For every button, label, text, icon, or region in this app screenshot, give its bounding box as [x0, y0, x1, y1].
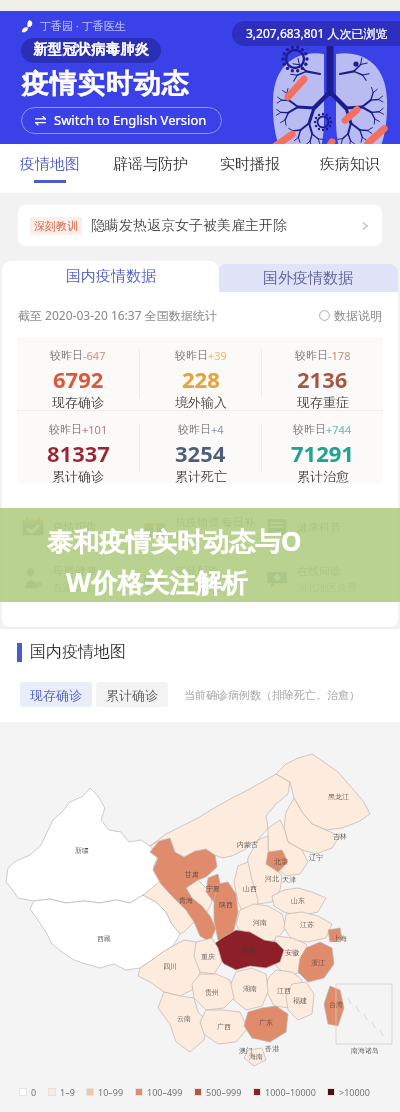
staticText: 较昨日	[49, 422, 82, 436]
button[interactable]: 疫情地图	[0, 144, 100, 193]
staticText: 湖北	[241, 946, 255, 955]
button[interactable]: 在线问诊	[264, 564, 386, 594]
button[interactable]: 抗疫物资 每日补货	[142, 514, 264, 544]
staticText: 境外输入	[175, 394, 227, 410]
button[interactable]: 疫情报告	[20, 514, 142, 540]
button[interactable]: 现存确诊	[20, 682, 92, 707]
staticText: 澳门	[239, 1046, 253, 1055]
button[interactable]: Switch to English Version	[21, 107, 222, 134]
staticText: 甘肃	[185, 870, 199, 879]
staticText: 0	[31, 1086, 37, 1098]
staticText: 100–499	[147, 1086, 183, 1098]
button[interactable]: 健康科普	[264, 514, 386, 540]
staticText: +39	[208, 348, 227, 363]
button[interactable]: 较昨日	[140, 337, 261, 410]
staticText: 228	[182, 364, 220, 394]
staticText: 国内疫情数据	[66, 267, 156, 286]
staticText: 累计确诊	[106, 687, 158, 703]
staticText: 3,207,683,801 人次已浏览	[246, 25, 388, 41]
staticText: 海南	[249, 1052, 263, 1061]
staticText: +101	[82, 422, 108, 437]
staticText: 国外疫情数据	[263, 269, 353, 288]
staticText: 上海	[333, 934, 347, 943]
staticText: 宁夏	[206, 884, 220, 893]
staticText: 河南	[253, 918, 267, 927]
staticText: 3254	[175, 438, 226, 468]
button[interactable]: 辟谣与防护	[100, 144, 200, 193]
staticText: 黑龙江	[328, 792, 349, 801]
staticText: 较昨日	[175, 348, 208, 362]
staticText: >10000	[339, 1086, 370, 1098]
staticText: 较昨日	[295, 348, 328, 362]
button[interactable]: 较昨日	[262, 411, 383, 484]
button[interactable]: 较昨日	[17, 411, 139, 484]
staticText: 泰和疫情实时动态与O	[47, 523, 302, 559]
staticText: 较昨日	[50, 348, 83, 362]
staticText: 截至 2020-03-20 16:37 全国数据统计	[18, 307, 217, 323]
staticText: 疫情报告	[53, 520, 97, 534]
staticText: 内蒙古	[237, 840, 258, 849]
staticText: 在家孕育指南	[53, 581, 113, 594]
button[interactable]: 实时播报	[200, 144, 300, 193]
staticText: -647	[83, 348, 106, 363]
staticText: 湖南	[243, 984, 257, 993]
staticText: 81337	[47, 438, 110, 468]
staticText: 北京	[274, 857, 288, 866]
staticText: 丁香园 · 丁香医生	[40, 18, 126, 33]
staticText: 现存重症	[297, 394, 349, 410]
staticText: 新型冠状病毒肺炎	[33, 41, 149, 59]
button[interactable]: 母婴健康	[20, 564, 142, 594]
staticText: 母婴健康	[53, 564, 97, 578]
staticText: 西藏	[97, 934, 111, 943]
staticText: 健康科普	[297, 520, 341, 534]
staticText: 福建	[293, 996, 307, 1005]
staticText: 陕西	[219, 900, 233, 909]
button[interactable]: 累计确诊	[96, 682, 168, 707]
staticText: 云南	[177, 1014, 191, 1023]
staticText: 台湾	[329, 1000, 343, 1009]
button[interactable]: 深刻教训	[18, 205, 382, 246]
staticText: Switch to English Version	[54, 111, 207, 129]
staticText: 广东	[259, 1018, 273, 1027]
staticText: 疫情地图	[20, 155, 80, 174]
staticText: 安徽	[285, 948, 299, 957]
staticText: 南海诸岛	[351, 1046, 379, 1055]
staticText: 山西	[243, 884, 257, 893]
staticText: 累计治愈	[297, 468, 349, 484]
button[interactable]: 国外疫情数据	[217, 264, 398, 292]
staticText: 辟谣与防护	[113, 155, 188, 174]
staticText: 四川	[163, 962, 177, 971]
staticText: -178	[328, 348, 351, 363]
staticText: 1000–10000	[265, 1086, 316, 1098]
staticText: 累计确诊	[52, 468, 104, 484]
staticText: 较昨日	[178, 422, 211, 436]
staticText: 药品配送	[175, 564, 219, 578]
staticText: 71291	[291, 438, 354, 468]
staticText: 在线问诊	[297, 564, 341, 578]
staticText: 现存确诊	[52, 394, 104, 410]
staticText: 抗疫物资 每日补货	[175, 514, 264, 544]
button[interactable]: 较昨日	[140, 411, 261, 484]
staticText: 吉林	[333, 832, 347, 841]
staticText: 6792	[53, 364, 104, 394]
staticText: 河北	[265, 874, 279, 883]
staticText: 数据说明	[334, 308, 382, 323]
staticText: 现存确诊	[30, 687, 82, 703]
button[interactable]: 药品配送	[142, 564, 264, 594]
staticText: W价格关注解析	[66, 564, 248, 600]
button[interactable]: 较昨日	[262, 337, 383, 410]
staticText: 快递送货上门	[175, 581, 235, 594]
staticText: 隐瞒发热返京女子被美雇主开除	[91, 217, 360, 235]
staticText: 当前确诊病例数（排除死亡、治愈）	[184, 688, 360, 702]
button[interactable]: 国内疫情数据	[2, 261, 219, 292]
staticText: 重庆	[201, 952, 215, 961]
staticText: 辽宁	[309, 853, 323, 862]
button[interactable]: 较昨日	[17, 337, 139, 410]
button[interactable]: 疾病知识	[300, 144, 400, 193]
staticText: 新疆	[75, 846, 89, 855]
staticText: 疫情实时动态	[21, 67, 189, 101]
staticText: 山东	[291, 896, 305, 905]
staticText: 天津	[282, 875, 296, 884]
staticText: 10–99	[98, 1086, 124, 1098]
